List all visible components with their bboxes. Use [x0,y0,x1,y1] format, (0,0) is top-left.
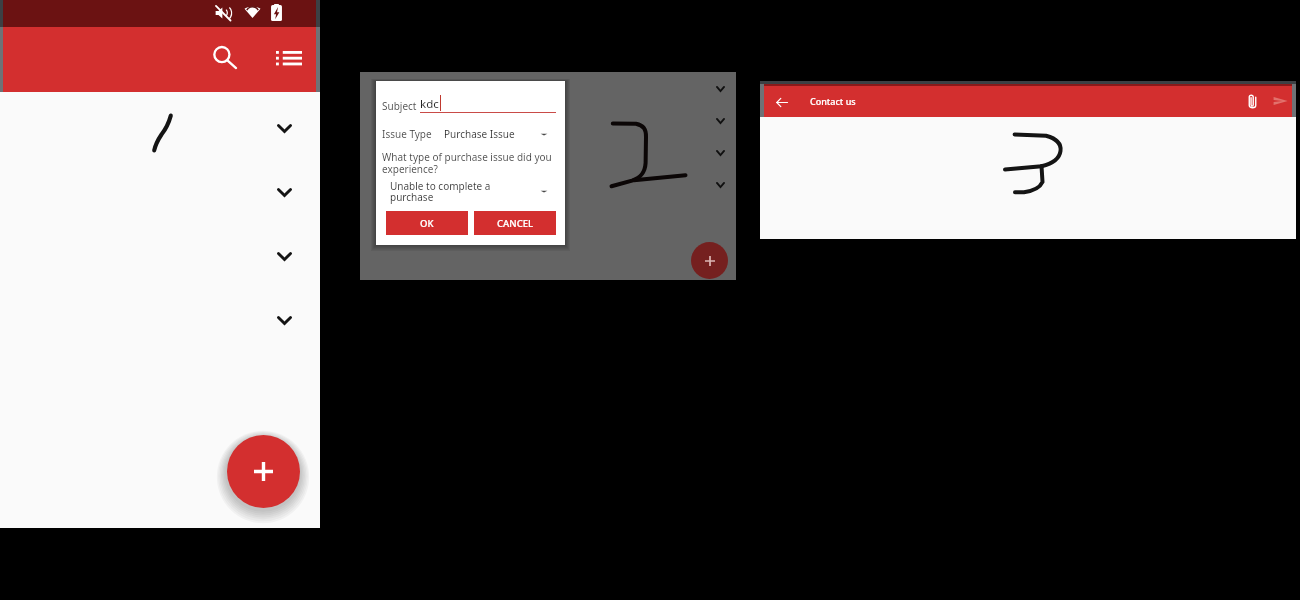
button[interactable]: Attach [1238,87,1266,115]
staticText: Issue Type [382,127,432,141]
button[interactable]: OK [386,211,468,235]
button[interactable] [704,105,736,137]
staticText: Purchase Issue [444,127,515,141]
button[interactable]: List view [269,37,309,77]
button[interactable]: Back [768,88,796,116]
staticText: Unable to complete a purchase [390,179,491,204]
button[interactable]: Issue type dropdown [532,127,555,141]
staticText: Contact us [810,95,856,107]
button[interactable] [0,288,320,352]
button[interactable] [704,169,736,201]
button[interactable]: Search [205,37,245,77]
button[interactable] [704,73,736,105]
button[interactable]: Add [691,242,728,279]
staticText: What type of purchase issue did you expe… [382,150,552,176]
button[interactable]: Send [1266,87,1294,115]
staticText: CANCEL [497,217,534,230]
button[interactable]: Add [227,435,300,508]
button[interactable] [0,224,320,288]
staticText: Subject [382,99,417,113]
button[interactable] [0,160,320,224]
staticText: OK [420,217,434,230]
button[interactable]: Purchase issue dropdown [532,184,555,198]
button[interactable]: CANCEL [474,211,556,235]
button[interactable] [0,96,320,160]
staticText: kdc [420,96,439,112]
button[interactable] [704,137,736,169]
